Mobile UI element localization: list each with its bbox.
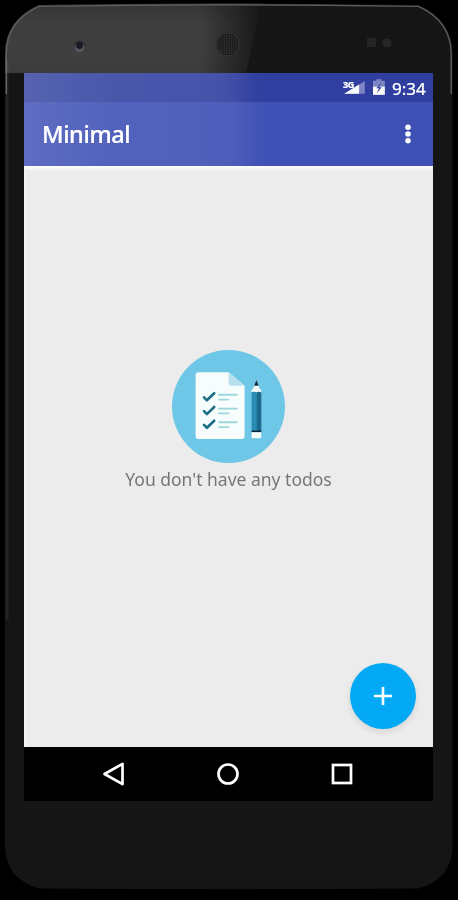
staticText: 3G [343,78,355,90]
staticText: 9:34 [392,77,426,100]
button[interactable]: Back [92,752,136,796]
button[interactable]: Add todo [350,663,416,729]
button[interactable]: Home [206,752,250,796]
button[interactable]: Recent apps [320,752,364,796]
button[interactable]: More options [386,112,430,156]
staticText: You don't have any todos [125,467,332,491]
staticText: Minimal [42,118,131,150]
